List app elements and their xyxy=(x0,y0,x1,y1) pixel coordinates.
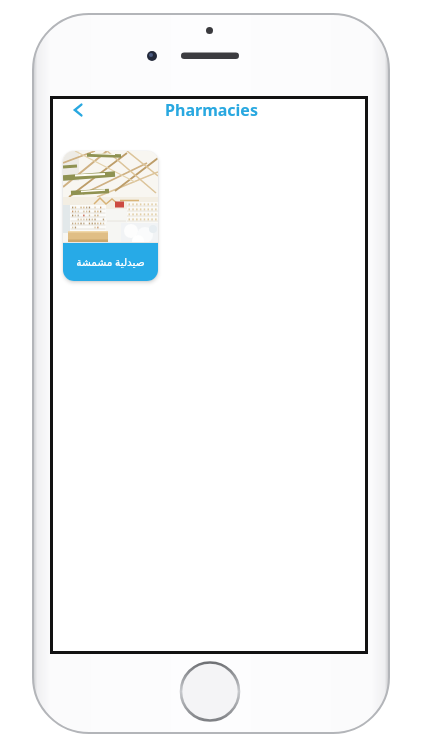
button[interactable] xyxy=(61,99,95,121)
staticText: صيدلية مشمشة xyxy=(76,255,145,269)
button[interactable]: صيدلية مشمشة xyxy=(63,151,158,281)
staticText: Pharmacies xyxy=(165,99,258,120)
